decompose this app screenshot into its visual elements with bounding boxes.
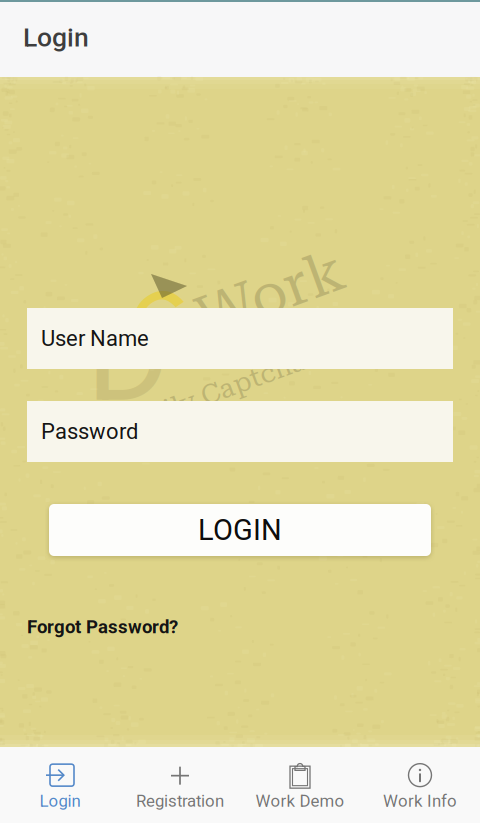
button[interactable]: LOGIN xyxy=(49,504,431,556)
staticText: Work Demo xyxy=(255,791,344,811)
staticText: Daily Captcha Work xyxy=(122,362,385,394)
button[interactable]: Work Demo xyxy=(240,750,360,820)
button[interactable]: Registration xyxy=(120,750,240,820)
staticText: D xyxy=(86,281,170,431)
button[interactable]: Forgot Password? xyxy=(0,614,480,640)
staticText: Login xyxy=(23,22,89,53)
staticText: Password xyxy=(41,419,138,444)
staticText: Forgot Password? xyxy=(27,616,178,638)
staticText: Work Info xyxy=(383,791,457,811)
staticText: Login xyxy=(39,791,80,811)
staticText: User Name xyxy=(41,326,149,351)
button[interactable]: Login xyxy=(0,750,120,820)
staticText: C xyxy=(134,269,202,391)
staticText: LOGIN xyxy=(198,513,282,547)
button[interactable]: Work Info xyxy=(360,750,480,820)
staticText: Registration xyxy=(136,791,224,811)
staticText: Work xyxy=(194,260,345,328)
